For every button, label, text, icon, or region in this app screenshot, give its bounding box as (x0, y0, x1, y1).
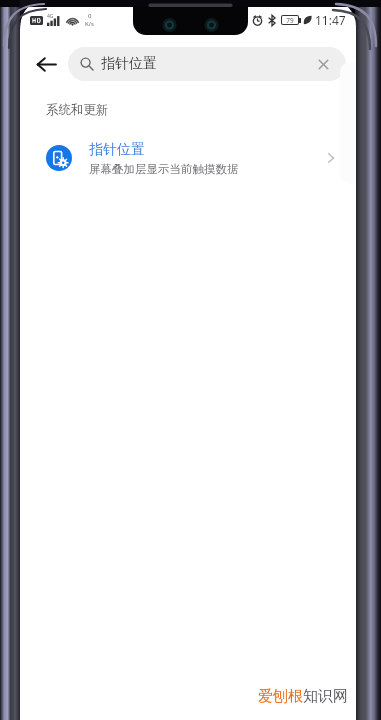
staticText: 爱刨根 (258, 687, 303, 706)
staticText: 11:47 (315, 12, 346, 28)
button[interactable]: 指针位置 (68, 47, 346, 81)
staticText: 79 (286, 16, 294, 24)
button[interactable]: Clear (310, 51, 336, 77)
staticText: 指针位置 (89, 141, 145, 159)
staticText: K/s (85, 20, 94, 28)
button[interactable]: 指针位置 (20, 130, 356, 186)
staticText: 知识网 (303, 687, 348, 706)
staticText: 屏幕叠加层显示当前触摸数据 (89, 162, 239, 176)
staticText: 4G (47, 13, 54, 20)
staticText: 系统和更新 (46, 102, 109, 118)
staticText: 0 (88, 12, 92, 20)
staticText: 指针位置 (101, 55, 157, 73)
button[interactable]: Back (26, 44, 66, 84)
